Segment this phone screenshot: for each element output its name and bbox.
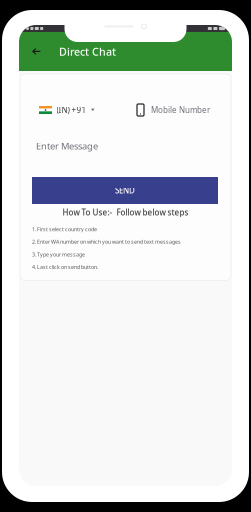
staticText: SEND — [115, 185, 135, 196]
button[interactable]: Back — [25, 32, 48, 71]
button[interactable]: SEND — [32, 177, 218, 204]
button[interactable]: (IN) +91 — [20, 101, 117, 119]
staticText: Mobile Number — [151, 105, 210, 115]
staticText: Enter Message — [36, 140, 98, 152]
staticText: 4. Last click on send button. — [32, 263, 98, 270]
staticText: 3. Type your message — [32, 251, 85, 258]
staticText: (IN) +91 — [56, 105, 86, 115]
button[interactable]: Mobile Number — [117, 101, 228, 119]
staticText: 1. First select country code — [32, 226, 97, 233]
staticText: Direct Chat — [59, 44, 116, 59]
staticText: 2. Enter WA number on which you want to … — [32, 238, 181, 245]
staticText: How To Use:- Follow below steps — [62, 207, 188, 218]
button[interactable]: Enter Message — [20, 136, 211, 156]
